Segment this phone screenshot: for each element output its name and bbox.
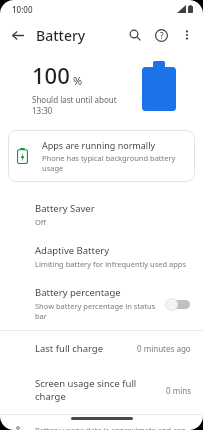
staticText: Should last until about: [32, 94, 117, 105]
button[interactable]: Adaptive Battery: [0, 236, 203, 278]
button[interactable]: Search: [122, 22, 148, 48]
staticText: Last full charge: [35, 342, 137, 355]
staticText: %: [73, 73, 83, 88]
staticText: Off: [35, 217, 47, 227]
staticText: Phone has typical background battery usa…: [42, 153, 186, 173]
button[interactable]: Screen usage since full charge: [0, 366, 203, 414]
button[interactable]: Battery Saver: [0, 194, 203, 236]
button[interactable]: Back: [4, 22, 30, 48]
staticText: ?: [160, 30, 164, 41]
staticText: Apps are running normally: [42, 139, 156, 151]
staticText: 100: [32, 60, 70, 90]
button[interactable]: Battery percentage: [0, 278, 203, 330]
staticText: Screen usage since full charge: [35, 377, 166, 403]
staticText: Adaptive Battery: [35, 244, 110, 257]
staticText: Battery percentage: [35, 286, 121, 299]
staticText: Show battery percentage in status bar: [35, 301, 159, 321]
button[interactable]: Help: [148, 22, 174, 48]
button[interactable]: More options: [174, 22, 200, 48]
staticText: 13:30: [32, 105, 53, 116]
staticText: Battery: [36, 26, 86, 45]
button[interactable]: Apps are running normally: [8, 130, 195, 182]
staticText: 10:00: [12, 4, 33, 15]
button[interactable]: Last full charge: [0, 331, 203, 366]
staticText: Battery Saver: [35, 202, 95, 215]
other: Battery percentage toggle: [165, 297, 191, 311]
staticText: Battery usage data is approximate and ca…: [35, 425, 189, 430]
staticText: 0 mins: [166, 385, 191, 396]
staticText: 0 minutes ago: [137, 343, 191, 354]
staticText: Limiting battery for infrequently used a…: [35, 259, 187, 269]
